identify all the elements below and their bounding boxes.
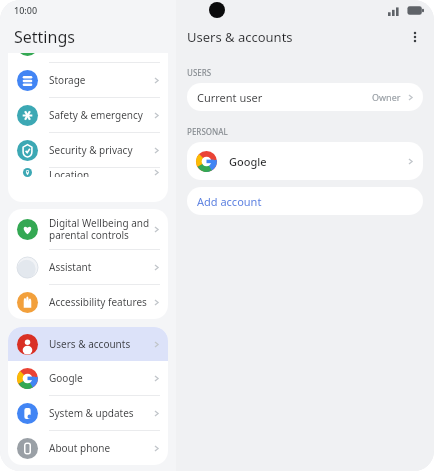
staticText: Google — [229, 154, 406, 169]
button[interactable]: Battery — [8, 53, 168, 62]
staticText: Security & privacy — [49, 143, 152, 157]
staticText: Add account — [197, 194, 262, 209]
staticText: USERS — [187, 67, 212, 78]
staticText: System & updates — [49, 406, 152, 420]
button[interactable]: Current user — [187, 83, 423, 111]
button[interactable]: System & updates — [8, 396, 168, 430]
staticText: PERSONAL — [187, 126, 228, 137]
button[interactable]: Add account — [187, 187, 423, 215]
button[interactable]: Location — [8, 168, 168, 177]
staticText: Settings — [14, 26, 75, 48]
staticText: Google — [49, 371, 152, 385]
staticText: About phone — [49, 441, 152, 455]
staticText: Safety & emergency — [49, 108, 152, 122]
staticText: Location — [49, 168, 152, 177]
staticText: Assistant — [49, 260, 152, 274]
staticText: Digital Wellbeing and parental controls — [49, 216, 152, 242]
button[interactable]: More options — [402, 24, 428, 50]
staticText: Current user — [197, 90, 372, 105]
button[interactable]: Safety & emergency — [8, 98, 168, 132]
staticText: 10:00 — [14, 4, 38, 16]
button[interactable]: Users & accounts — [8, 327, 168, 361]
button[interactable]: Security & privacy — [8, 133, 168, 167]
staticText: Owner — [372, 91, 401, 103]
staticText: Users & accounts — [187, 28, 402, 46]
staticText: Storage — [49, 73, 152, 87]
button[interactable]: Google — [8, 361, 168, 395]
button[interactable]: Accessibility features — [8, 285, 168, 319]
button[interactable]: Assistant — [8, 250, 168, 284]
staticText: Accessibility features — [49, 295, 152, 309]
staticText: Users & accounts — [49, 337, 152, 351]
button[interactable]: About phone — [8, 431, 168, 465]
button[interactable]: Google — [187, 142, 423, 180]
button[interactable]: Digital Wellbeing and parental controls — [8, 209, 168, 249]
button[interactable]: Storage — [8, 63, 168, 97]
